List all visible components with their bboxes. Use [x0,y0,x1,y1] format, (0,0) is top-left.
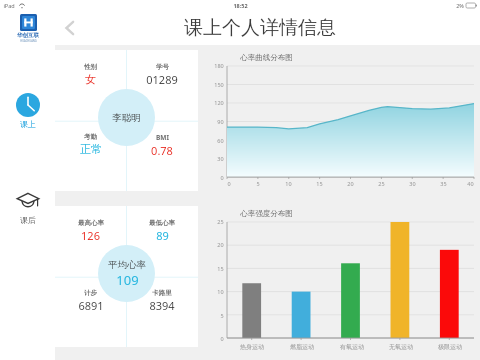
staticText: 心率曲线分布图 [240,53,293,62]
staticText: 最高心率 [78,219,104,227]
staticText: 01289 [146,72,178,87]
staticText: 0 [227,180,231,187]
staticText: 90 [217,118,224,125]
other: 课后 [16,189,40,213]
staticText: 30 [409,180,416,187]
staticText: 10 [285,180,292,187]
staticText: 5 [256,180,260,187]
staticText: 89 [156,228,169,243]
staticText: 最低心率 [149,219,175,227]
staticText: 126 [81,228,100,243]
staticText: 0 [220,335,224,342]
staticText: 18:52 [233,2,248,9]
staticText: 热身运动 [240,343,264,351]
button[interactable]: 返回 [57,15,83,41]
staticText: 0 [220,174,224,181]
staticText: 35 [440,180,447,187]
staticText: 心率强度分布图 [240,209,293,218]
staticText: 卡路里 [152,289,172,297]
staticText: 20 [217,241,224,248]
staticText: 60 [217,137,224,144]
button[interactable]: 最高心率 [55,206,198,347]
staticText: 无氧运动 [389,343,413,351]
button[interactable]: 课后 [12,185,44,229]
staticText: 正常 [80,142,102,156]
staticText: 25 [378,180,385,187]
staticText: 120 [214,99,224,106]
staticText: 8394 [149,298,175,313]
staticText: 5 [220,312,224,319]
staticText: 10 [217,288,224,295]
staticText: 15 [217,265,224,272]
staticText: 燃脂运动 [290,343,314,351]
staticText: BMI [156,133,169,142]
staticText: 20 [347,180,354,187]
staticText: 6891 [78,298,104,313]
staticText: 极限运动 [438,343,462,351]
staticText: 课后 [20,215,36,225]
staticText: HUACHUANG [20,39,37,43]
staticText: 学号 [156,63,169,71]
staticText: 性别 [84,63,97,71]
staticText: 女 [85,72,96,86]
staticText: 平均心率 [108,259,146,271]
button[interactable]: 课上 [12,89,44,133]
staticText: 2% [456,2,464,9]
staticText: 课上 [20,119,36,129]
staticText: 150 [214,81,224,88]
staticText: 109 [116,271,139,289]
staticText: 考勤 [84,133,97,141]
staticText: 180 [214,62,224,69]
staticText: 40 [467,180,474,187]
staticText: 李聪明 [112,112,141,124]
other: 课上 [16,93,40,117]
staticText: 15 [316,180,323,187]
staticText: 课上个人详情信息 [184,16,336,40]
staticText: 30 [217,155,224,162]
staticText: 25 [217,218,224,225]
staticText: 有氧运动 [340,343,364,351]
staticText: 华创互联 [17,32,39,39]
staticText: 0.78 [151,143,173,158]
button[interactable]: 性别 [55,50,198,191]
staticText: 计步 [84,289,97,297]
staticText: iPad [3,2,15,9]
